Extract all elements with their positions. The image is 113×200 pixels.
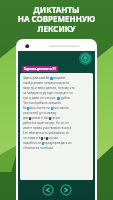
staticText: Его обязанность уважывать за xyxy=(23,131,69,135)
staticText: наибрсывают затрачеными на xyxy=(23,81,70,85)
staticText: Задание-диктант №12 xyxy=(24,67,56,71)
staticText: тся между xyxy=(41,111,57,115)
staticText: Чистая прибыль хозяина xyxy=(23,101,61,105)
staticText: постоянна xyxy=(53,106,69,110)
staticText: вась оченъ не xyxy=(29,106,51,110)
staticText: два xyxy=(23,116,29,120)
button[interactable]: Назад xyxy=(42,184,54,196)
staticText: сятью xyxy=(51,116,60,120)
staticText: з близости полиция. xyxy=(23,146,54,150)
staticText: ДИКТАНТЫ НА СОВРЕМЕННУЮ ЛЕКСИКУ xyxy=(0,4,113,35)
staticText: рубля. xyxy=(60,96,71,100)
staticText: цатью и пят xyxy=(31,116,49,120)
staticText: закуску и вино деньги, потому что xyxy=(23,86,75,90)
button[interactable]: Задание-диктант №12 xyxy=(22,66,58,72)
staticText: случае xyxy=(48,136,59,140)
staticText: в xyxy=(43,136,46,140)
staticText: гостями и в xyxy=(23,136,41,140)
staticText: предупреждать из xyxy=(44,141,72,145)
button[interactable]: Вперёд xyxy=(60,184,72,196)
button[interactable]: Здесь уже сам бе xyxy=(20,73,93,180)
staticText: зициент xyxy=(53,76,66,80)
staticText: за каждою игру карт получает по xyxy=(23,91,73,95)
staticText: бо xyxy=(23,106,27,110)
staticText: три и даже по четыре xyxy=(23,96,57,100)
staticText: имеет права участвовать в игре. xyxy=(23,126,72,130)
button[interactable]: Подсказка xyxy=(79,52,92,65)
staticText: рублей в один вечер. Но он не xyxy=(23,121,69,125)
staticText: она колеб xyxy=(23,111,39,115)
staticText: надобности xyxy=(23,141,42,145)
staticText: Здесь уже сам бе xyxy=(23,76,50,80)
